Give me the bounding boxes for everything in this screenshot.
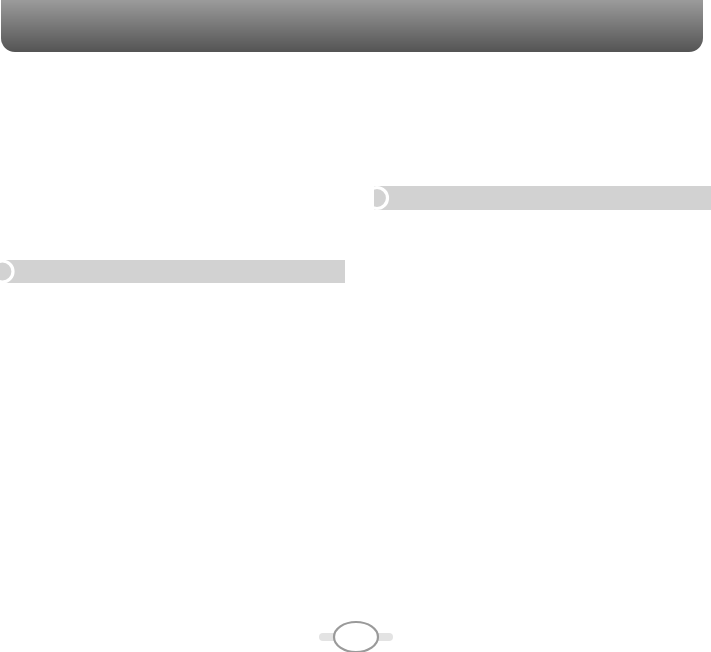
button[interactable]: Header <box>0 0 711 652</box>
